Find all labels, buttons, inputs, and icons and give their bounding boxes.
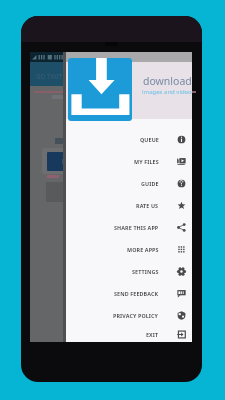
- staticText: images and video: [142, 88, 192, 96]
- staticText: EXIT: [146, 331, 159, 338]
- button[interactable]: PRIVACY POLICY: [66, 304, 192, 326]
- button[interactable]: MORE APPS: [66, 238, 192, 260]
- button[interactable]: SETTINGS: [66, 260, 192, 282]
- staticText: download: [143, 74, 192, 88]
- staticText: GUIDE: [141, 180, 159, 187]
- button[interactable]: EXIT: [66, 326, 192, 342]
- staticText: FIND: [62, 157, 80, 167]
- staticText: QUEUE: [140, 136, 159, 143]
- staticText: SEND FEEDBACK: [114, 290, 159, 297]
- button[interactable]: SHARE THIS APP: [66, 216, 192, 238]
- button[interactable]: MY FILES: [66, 150, 192, 172]
- button[interactable]: QUEUE: [66, 128, 192, 150]
- staticText: SHARE THIS APP: [114, 224, 159, 231]
- staticText: RATE US: [136, 202, 159, 209]
- staticText: MY FILES: [134, 158, 159, 165]
- staticText: PRIVACY POLICY: [113, 312, 159, 319]
- staticText: MORE APPS: [127, 246, 159, 253]
- button[interactable]: SEND FEEDBACK: [66, 282, 192, 304]
- button[interactable]: GUIDE: [66, 172, 192, 194]
- button[interactable]: RATE US: [66, 194, 192, 216]
- staticText: SETTINGS: [132, 268, 159, 275]
- staticText: GO TWIT: [36, 72, 62, 80]
